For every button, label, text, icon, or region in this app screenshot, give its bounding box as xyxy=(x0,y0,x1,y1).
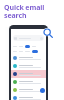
button[interactable] xyxy=(11,78,46,86)
button[interactable] xyxy=(11,70,46,78)
button[interactable] xyxy=(11,94,46,100)
button[interactable] xyxy=(11,86,46,94)
staticText: Quick email search xyxy=(4,3,45,20)
button[interactable] xyxy=(25,45,30,48)
button[interactable]: Compose xyxy=(40,88,45,93)
button[interactable] xyxy=(11,62,46,70)
button[interactable] xyxy=(32,50,38,53)
button[interactable]: Search xyxy=(43,28,52,37)
button[interactable] xyxy=(13,35,44,41)
button[interactable] xyxy=(11,54,46,62)
